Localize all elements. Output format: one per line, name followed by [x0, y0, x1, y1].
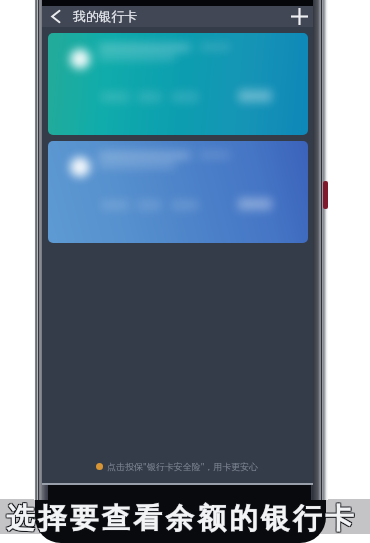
staticText: 选择要查看余额的银行卡: [5, 501, 356, 537]
button[interactable]: [48, 141, 308, 243]
staticText: 选择要查看余额的银行卡: [5, 500, 356, 536]
staticText: 选择要查看余额的银行卡: [7, 501, 358, 537]
staticText: 选择要查看余额的银行卡: [5, 502, 356, 538]
button[interactable]: 点击投保"银行卡安全险"，用卡更安心: [42, 460, 313, 472]
staticText: 选择要查看余额的银行卡: [6, 502, 357, 538]
button[interactable]: [48, 33, 308, 135]
button[interactable]: Back: [45, 6, 66, 27]
staticText: 选择要查看余额的银行卡: [7, 502, 358, 538]
staticText: 点击投保"银行卡安全险"，用卡更安心: [107, 460, 259, 472]
staticText: 选择要查看余额的银行卡: [7, 500, 358, 536]
staticText: 选择要查看余额的银行卡: [6, 500, 357, 536]
staticText: 选择要查看余额的银行卡: [6, 501, 357, 537]
staticText: 我的银行卡: [73, 9, 138, 25]
button[interactable]: Add card: [289, 6, 310, 27]
